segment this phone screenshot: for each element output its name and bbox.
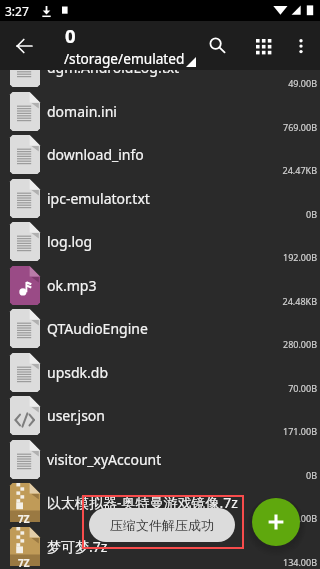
button[interactable]: 7Z	[0, 525, 320, 569]
button[interactable]: upsdk.db	[0, 351, 320, 395]
button[interactable]: ipc-emulator.txt	[0, 177, 320, 221]
staticText: 200.00B	[241, 512, 317, 524]
staticText: 以太模拟器-奥特曼游戏镜像.7z	[47, 493, 252, 512]
button[interactable]: log.log	[0, 220, 320, 264]
button[interactable]	[59, 25, 204, 67]
button[interactable]: 7Z	[0, 481, 320, 525]
staticText: 171.00B	[241, 425, 317, 437]
button[interactable]: Add	[252, 498, 300, 546]
staticText: 769.00B	[241, 121, 317, 133]
staticText: ipc-emulator.txt	[47, 189, 252, 208]
button[interactable]: More options	[284, 29, 318, 63]
button[interactable]: domain.ini	[0, 90, 320, 134]
staticText: 0B	[241, 208, 317, 220]
staticText: domain.ini	[47, 102, 252, 121]
staticText: download_info	[47, 145, 252, 164]
staticText: 24.48KB	[241, 295, 317, 307]
staticText: 192.00B	[241, 251, 317, 263]
staticText: QTAudioEngine	[47, 319, 252, 338]
staticText: 134.00B	[241, 556, 317, 568]
button[interactable]: Grid view	[246, 29, 280, 63]
staticText: user.json	[47, 406, 252, 425]
staticText: 24.47KB	[241, 164, 317, 176]
staticText: /storage/emulated	[64, 49, 185, 68]
staticText: ok.mp3	[47, 276, 252, 295]
staticText: 7Z	[18, 512, 30, 526]
staticText: 280.00B	[241, 338, 317, 350]
staticText: 70.00B	[241, 382, 317, 394]
staticText: dgm.AndroidLog.txt	[47, 58, 252, 77]
button[interactable]: dgm.AndroidLog.txt	[0, 46, 320, 90]
staticText: 梦可梦.7z	[47, 537, 252, 556]
staticText: 0B	[241, 469, 317, 481]
button[interactable]: Search	[201, 29, 235, 63]
button[interactable]: user.json	[0, 394, 320, 438]
staticText: upsdk.db	[47, 363, 252, 382]
staticText: 压缩文件解压成功	[110, 517, 214, 533]
staticText: 3:27	[5, 3, 29, 19]
staticText: 0	[65, 23, 76, 48]
staticText: 49.00B	[241, 77, 317, 89]
staticText: log.log	[47, 232, 252, 251]
button[interactable]: visitor_xyAccount	[0, 438, 320, 482]
button[interactable]: Back	[8, 29, 42, 63]
button[interactable]: QTAudioEngine	[0, 307, 320, 351]
staticText: visitor_xyAccount	[47, 450, 252, 469]
button[interactable]: download_info	[0, 133, 320, 177]
staticText: 7Z	[18, 556, 30, 569]
button[interactable]: ok.mp3	[0, 264, 320, 308]
